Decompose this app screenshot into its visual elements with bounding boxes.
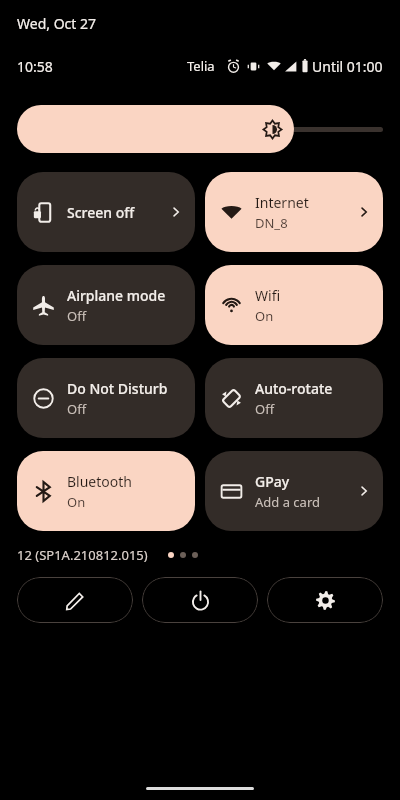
button[interactable]: Screen off bbox=[17, 172, 195, 252]
staticText: Add a card bbox=[255, 493, 320, 511]
staticText: Screen off bbox=[67, 203, 135, 222]
staticText: Off bbox=[67, 400, 87, 418]
staticText: Telia bbox=[187, 57, 215, 75]
staticText: Until 01:00 bbox=[312, 57, 383, 76]
staticText: Wifi bbox=[255, 286, 281, 305]
button[interactable]: Airplane mode bbox=[17, 265, 195, 345]
button[interactable]: Edit bbox=[17, 577, 133, 623]
button[interactable]: Do Not Disturb bbox=[17, 358, 195, 438]
button[interactable]: Bluetooth bbox=[17, 451, 195, 531]
button[interactable]: Internet bbox=[205, 172, 383, 252]
button[interactable]: GPay bbox=[205, 451, 383, 531]
staticText: DN_8 bbox=[255, 214, 288, 232]
staticText: On bbox=[255, 307, 274, 325]
button[interactable]: Wifi bbox=[205, 265, 383, 345]
staticText: Bluetooth bbox=[67, 472, 132, 491]
staticText: Auto-rotate bbox=[255, 379, 333, 398]
staticText: 12 (SP1A.210812.015) bbox=[17, 546, 148, 564]
button[interactable]: Settings bbox=[267, 577, 383, 623]
button[interactable]: Brightness bbox=[17, 105, 383, 153]
staticText: Internet bbox=[255, 193, 309, 212]
button[interactable]: Auto-rotate bbox=[205, 358, 383, 438]
staticText: Do Not Disturb bbox=[67, 379, 168, 398]
staticText: Airplane mode bbox=[67, 286, 166, 305]
staticText: GPay bbox=[255, 472, 290, 491]
staticText: Wed, Oct 27 bbox=[17, 14, 97, 33]
staticText: On bbox=[67, 493, 86, 511]
button[interactable]: Power bbox=[142, 577, 258, 623]
staticText: Off bbox=[255, 400, 275, 418]
staticText: 10:58 bbox=[17, 57, 53, 76]
staticText: Off bbox=[67, 307, 87, 325]
